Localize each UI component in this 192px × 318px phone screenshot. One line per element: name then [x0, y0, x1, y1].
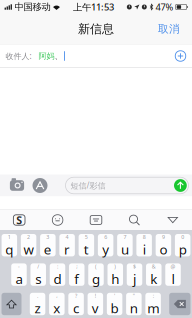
button[interactable]: '	[107, 293, 122, 315]
button[interactable]: 2	[21, 234, 36, 256]
staticText: 3	[46, 233, 49, 240]
staticText: 短信/彩信	[70, 180, 105, 191]
staticText: y	[102, 240, 109, 258]
button[interactable]: @	[165, 263, 181, 286]
button[interactable]: Send	[174, 179, 187, 192]
staticText: q	[5, 240, 13, 258]
staticText: k	[150, 270, 157, 288]
staticText: 、	[54, 51, 62, 61]
staticText: w	[24, 240, 34, 258]
button[interactable]: 9	[156, 234, 171, 256]
staticText: 阿妈	[38, 51, 54, 61]
staticText: m	[147, 299, 159, 317]
button[interactable]: ,	[49, 293, 65, 315]
staticText: f	[74, 270, 79, 288]
staticText: )	[114, 263, 116, 270]
staticText: S	[16, 213, 22, 227]
staticText: &	[152, 263, 156, 270]
staticText: -	[18, 263, 20, 270]
staticText: 8	[143, 233, 146, 240]
button[interactable]: Emoji	[38, 214, 77, 226]
staticText: 取消	[158, 22, 180, 35]
staticText: 2	[27, 233, 30, 240]
button[interactable]: !	[88, 293, 103, 315]
staticText: 5	[85, 233, 88, 240]
button[interactable]: ;	[69, 263, 84, 286]
button[interactable]: -	[11, 263, 27, 286]
staticText: /	[37, 263, 39, 270]
button[interactable]: 4	[59, 234, 75, 256]
button[interactable]: Sogou input	[0, 214, 38, 226]
button[interactable]: 5	[79, 234, 94, 256]
button[interactable]: Delete	[169, 293, 190, 315]
staticText: n	[130, 299, 138, 317]
staticText: '	[114, 292, 115, 299]
button[interactable]: (	[88, 263, 104, 286]
button[interactable]: Hide keyboard	[154, 215, 192, 225]
staticText: x	[53, 299, 60, 317]
staticText: p	[179, 240, 187, 258]
button[interactable]: /	[30, 263, 46, 286]
button[interactable]: $	[127, 263, 142, 286]
button[interactable]: Search	[115, 214, 154, 226]
staticText: o	[159, 240, 167, 258]
button[interactable]: Camera	[6, 175, 27, 195]
staticText: e	[44, 240, 52, 258]
staticText: j	[133, 270, 136, 288]
staticText: :	[57, 263, 58, 270]
staticText: v	[92, 299, 99, 317]
button[interactable]: Apps	[27, 175, 52, 195]
button[interactable]: Phrases	[77, 215, 115, 225]
staticText: 7	[123, 233, 126, 240]
staticText: !	[95, 292, 96, 299]
staticText: 中国移动	[14, 1, 50, 13]
staticText: r	[64, 240, 70, 258]
staticText: c	[73, 299, 79, 317]
staticText: "	[133, 292, 135, 299]
staticText: l	[171, 270, 174, 288]
button[interactable]: Add contact	[174, 49, 187, 62]
staticText: b	[111, 299, 119, 317]
staticText: 上午11:53	[73, 1, 114, 13]
button[interactable]: .	[30, 293, 45, 315]
staticText: u	[121, 240, 129, 258]
staticText: 新信息	[78, 22, 114, 36]
button[interactable]: 3	[40, 234, 56, 256]
staticText: 9	[162, 233, 165, 240]
staticText: 收件人:	[5, 51, 31, 61]
button[interactable]: 取消	[150, 16, 192, 41]
button[interactable]: )	[107, 263, 123, 286]
staticText: s	[35, 270, 41, 288]
staticText: $	[133, 263, 136, 270]
staticText: ;	[76, 263, 77, 270]
button[interactable]: &	[146, 263, 161, 286]
staticText: :	[153, 292, 154, 299]
button[interactable]: Shift	[1, 293, 21, 315]
button[interactable]: 8	[136, 234, 152, 256]
staticText: z	[35, 299, 41, 317]
staticText: 4	[66, 233, 69, 240]
staticText: g	[92, 270, 100, 288]
staticText: ?	[75, 292, 77, 299]
staticText: a	[15, 270, 22, 288]
staticText: ,	[56, 292, 57, 299]
button[interactable]: 0	[175, 234, 190, 256]
staticText: d	[53, 270, 61, 288]
staticText: 0	[181, 233, 184, 240]
staticText: .	[37, 292, 38, 299]
button[interactable]: :	[145, 293, 161, 315]
staticText: t	[84, 240, 89, 258]
staticText: 1	[8, 233, 11, 240]
staticText: 47%	[156, 1, 174, 13]
staticText: @	[170, 263, 175, 270]
staticText: i	[143, 240, 146, 258]
button[interactable]: "	[126, 293, 142, 315]
button[interactable]: 7	[117, 234, 133, 256]
button[interactable]: 6	[98, 234, 113, 256]
staticText: 6	[104, 233, 107, 240]
staticText: h	[111, 270, 119, 288]
button[interactable]: ?	[68, 293, 84, 315]
button[interactable]: 1	[2, 234, 17, 256]
staticText: (	[95, 263, 97, 270]
button[interactable]: :	[50, 263, 65, 286]
